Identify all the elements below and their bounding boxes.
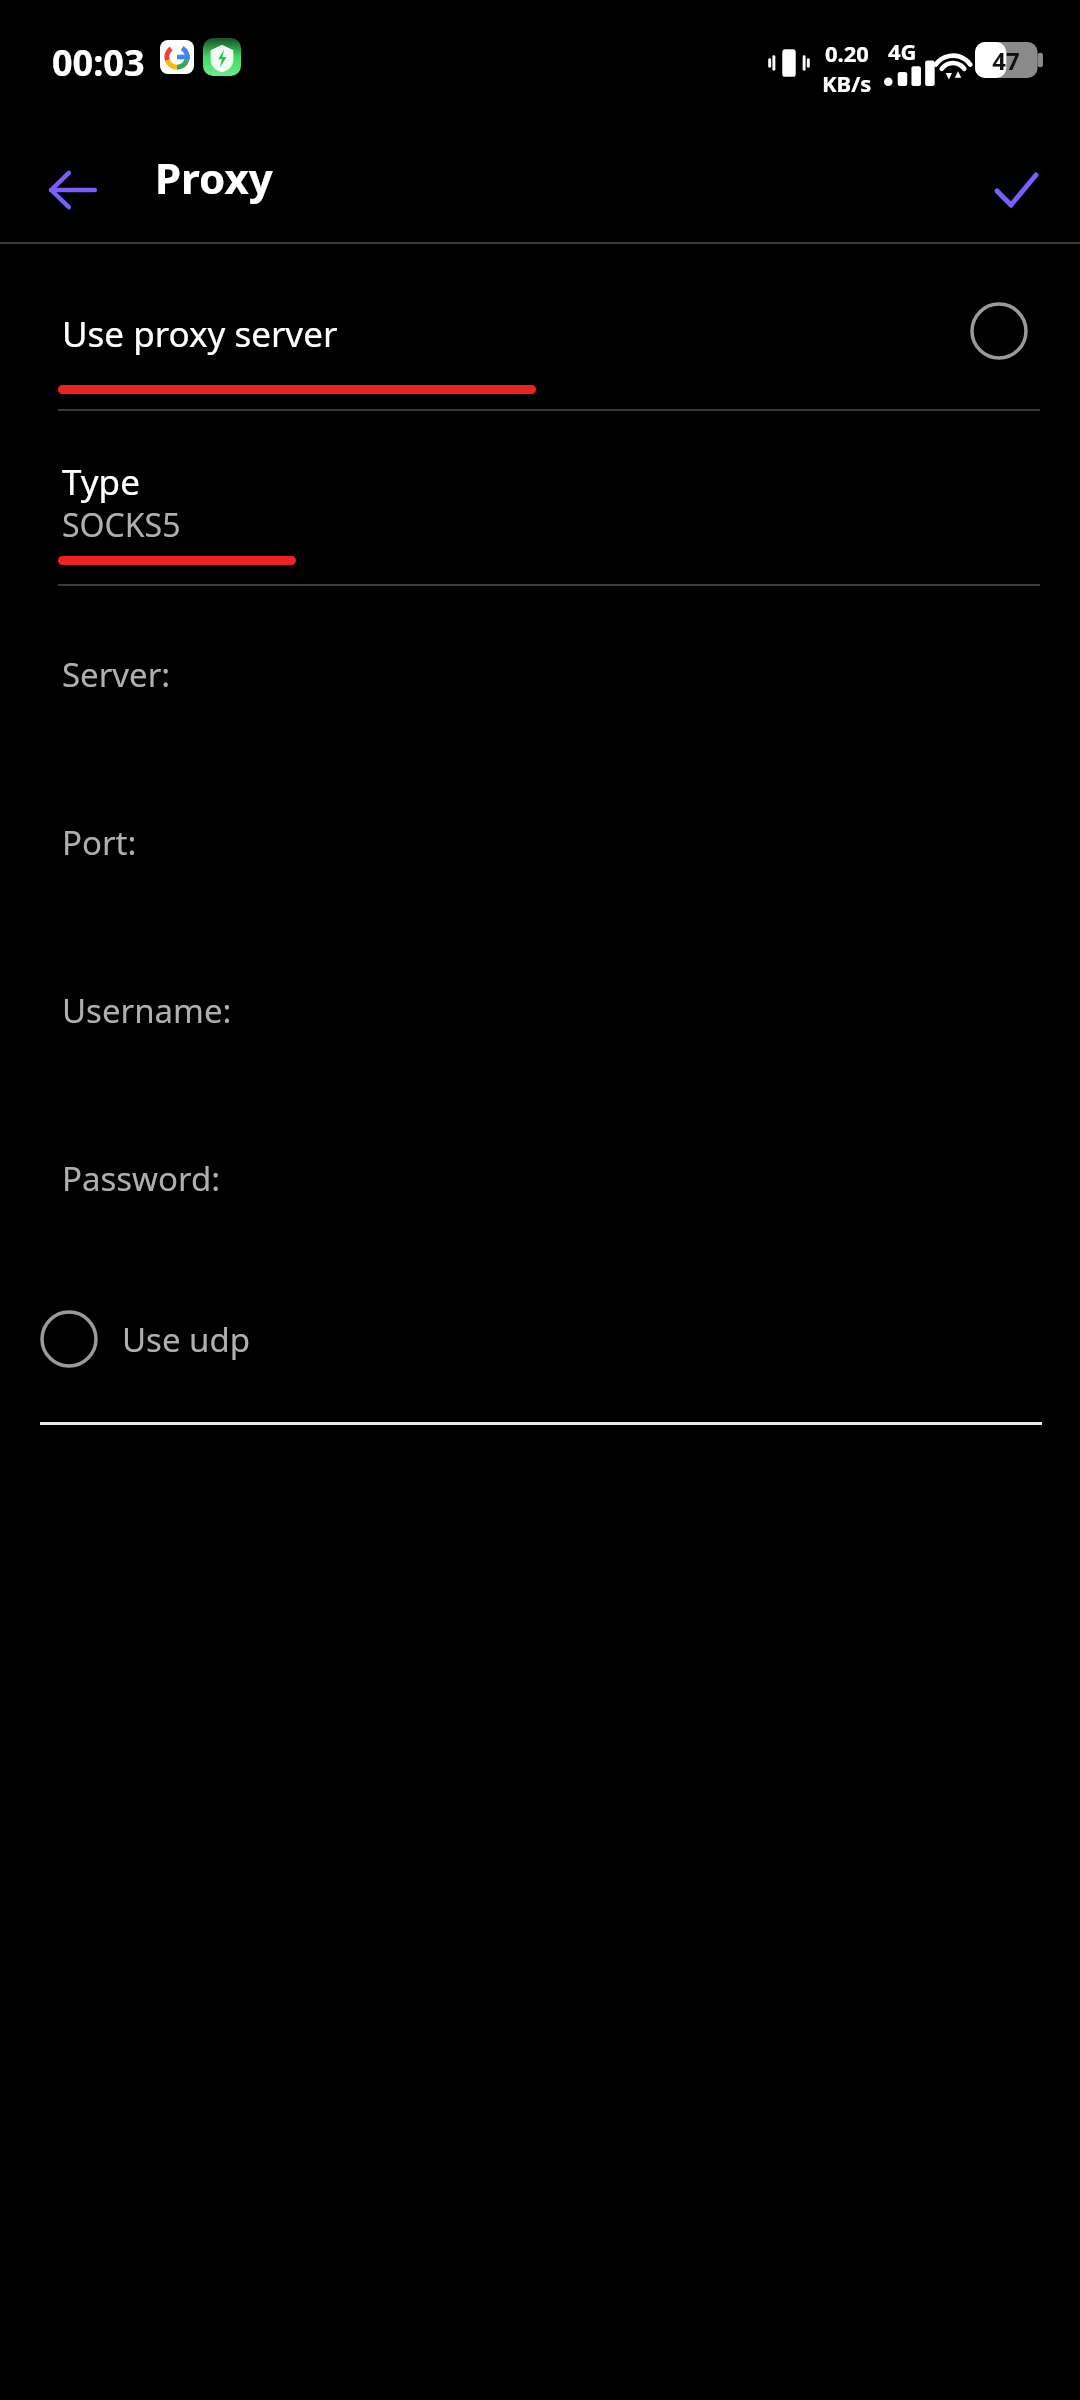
staticText: Use udp bbox=[122, 1317, 251, 1362]
button[interactable]: Username: bbox=[0, 980, 1080, 1070]
button[interactable]: Save bbox=[968, 142, 1064, 238]
button[interactable]: Password: bbox=[0, 1148, 1080, 1238]
staticText: Port: bbox=[62, 820, 137, 865]
button[interactable]: Type bbox=[0, 430, 1080, 585]
staticText: SOCKS5 bbox=[62, 503, 181, 547]
staticText: Proxy bbox=[155, 149, 273, 206]
staticText: Use proxy server bbox=[62, 310, 338, 358]
staticText: Server: bbox=[62, 652, 171, 697]
staticText: 4G bbox=[888, 36, 917, 66]
button[interactable]: Use udp bbox=[40, 1300, 340, 1378]
staticText: 00:03 bbox=[52, 38, 145, 87]
staticText: Type bbox=[62, 458, 140, 506]
button[interactable]: Server: bbox=[0, 644, 1080, 734]
staticText: KB/s bbox=[822, 68, 872, 98]
staticText: Username: bbox=[62, 988, 232, 1033]
staticText: 47 bbox=[992, 44, 1020, 77]
button[interactable]: Back bbox=[25, 142, 121, 238]
button[interactable]: Port: bbox=[0, 812, 1080, 902]
staticText: Password: bbox=[62, 1156, 221, 1201]
button[interactable]: Use proxy server bbox=[0, 250, 1080, 410]
staticText: 0.20 bbox=[825, 38, 869, 68]
